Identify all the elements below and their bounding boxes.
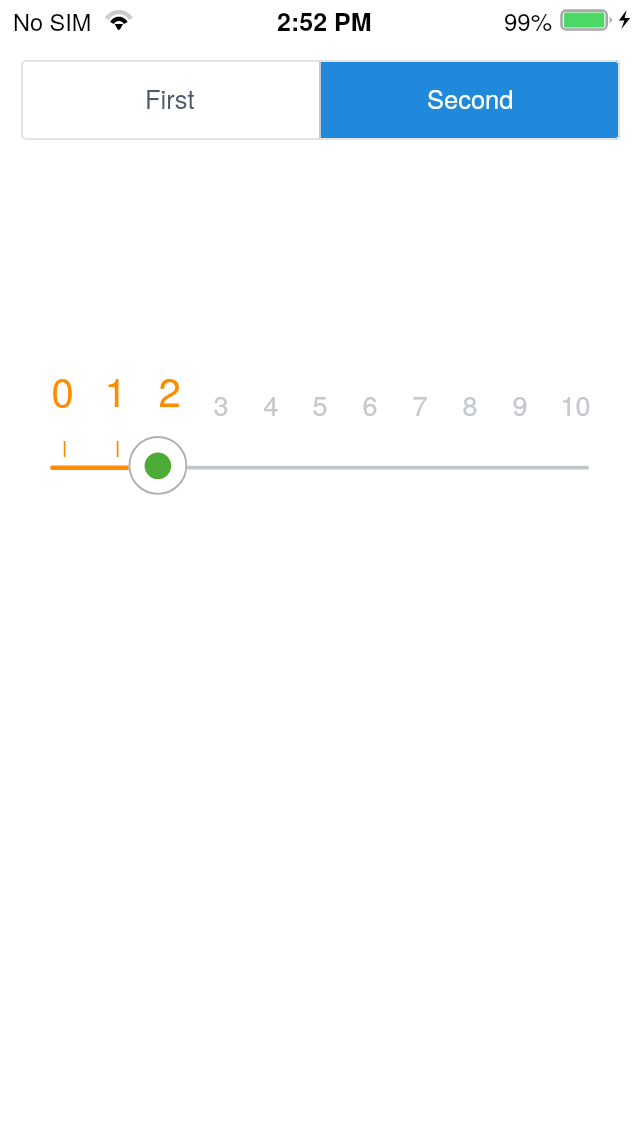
button[interactable]: Value slider, 2 of 10 xyxy=(0,0,640,560)
staticText: 1 xyxy=(104,361,127,418)
button[interactable]: Second xyxy=(321,60,620,140)
staticText: First xyxy=(145,80,195,117)
staticText: No SIM xyxy=(13,4,92,38)
button[interactable]: 3 xyxy=(191,385,251,424)
button[interactable]: 5 xyxy=(290,385,350,424)
button[interactable]: 10 xyxy=(545,385,605,424)
staticText: 2:52 PM xyxy=(277,3,372,39)
staticText: 3 xyxy=(213,385,229,424)
staticText: 7 xyxy=(412,385,428,424)
button[interactable]: 4 xyxy=(241,385,301,424)
staticText: 99% xyxy=(504,3,553,37)
button[interactable]: 2 xyxy=(139,361,199,418)
staticText: 5 xyxy=(312,385,328,424)
button[interactable]: 6 xyxy=(340,385,400,424)
staticText: 6 xyxy=(362,385,378,424)
button[interactable]: 0 xyxy=(32,361,92,418)
other: Battery 99 percent, charging xyxy=(556,6,636,34)
button[interactable]: 7 xyxy=(390,385,450,424)
button[interactable]: 9 xyxy=(490,385,550,424)
staticText: 0 xyxy=(51,361,74,418)
other: Wi-Fi signal xyxy=(102,4,136,34)
staticText: 2 xyxy=(158,361,181,418)
staticText: Second xyxy=(427,80,514,117)
staticText: 10 xyxy=(560,385,591,424)
staticText: 9 xyxy=(512,385,528,424)
staticText: 4 xyxy=(263,385,279,424)
staticText: 8 xyxy=(462,385,478,424)
button[interactable]: First xyxy=(21,60,319,140)
button[interactable]: 8 xyxy=(440,385,500,424)
button[interactable]: 1 xyxy=(85,361,145,418)
